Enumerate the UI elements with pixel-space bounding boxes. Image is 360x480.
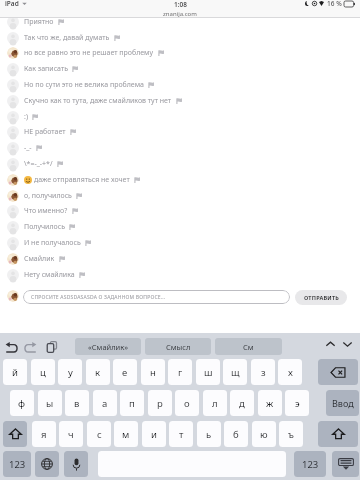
button[interactable]: й: [3, 359, 27, 385]
staticText: р: [157, 397, 163, 410]
button[interactable]: в: [65, 390, 89, 416]
button[interactable]: з: [251, 359, 275, 385]
button[interactable]: НЕ работает: [0, 124, 360, 140]
button[interactable]: Dictation: [64, 451, 88, 477]
staticText: 1:08: [174, 0, 187, 9]
button[interactable]: т: [169, 421, 193, 447]
button[interactable]: Redo: [22, 341, 38, 353]
button[interactable]: И не получалось: [0, 235, 360, 251]
button[interactable]: л: [203, 390, 227, 416]
button[interactable]: См: [215, 338, 282, 355]
staticText: ъ: [288, 428, 294, 441]
staticText: ь: [206, 428, 212, 441]
button[interactable]: Так что же, давай думать: [0, 30, 360, 46]
staticText: а: [102, 397, 108, 410]
button[interactable]: 123: [3, 451, 31, 477]
button[interactable]: б: [224, 421, 248, 447]
button[interactable]: я: [32, 421, 56, 447]
staticText: -_-: [24, 143, 32, 153]
button[interactable]: :): [0, 109, 360, 125]
button[interactable]: ж: [258, 390, 282, 416]
button[interactable]: м: [114, 421, 138, 447]
button[interactable]: Как записать: [0, 61, 360, 77]
staticText: Но по сути это не велика проблема: [24, 80, 144, 90]
button[interactable]: г: [168, 359, 192, 385]
staticText: х: [288, 366, 293, 379]
button[interactable]: д: [230, 390, 254, 416]
staticText: Так что же, давай думать: [24, 33, 110, 43]
button[interactable]: Ввод: [326, 390, 359, 416]
button[interactable]: и: [142, 421, 166, 447]
staticText: б: [233, 428, 239, 441]
button[interactable]: о, получилось: [0, 188, 360, 204]
button[interactable]: Backspace: [318, 359, 358, 385]
button[interactable]: э: [285, 390, 309, 416]
button[interactable]: ы: [38, 390, 62, 416]
button[interactable]: ю: [252, 421, 276, 447]
button[interactable]: с: [87, 421, 111, 447]
button[interactable]: \*=-_-+*/: [0, 156, 360, 172]
staticText: 123: [302, 458, 319, 471]
staticText: к: [95, 366, 101, 379]
button[interactable]: Нету смайлика: [0, 267, 360, 283]
staticText: с: [97, 428, 102, 441]
staticText: Приятно: [24, 17, 54, 27]
staticText: Ввод: [332, 397, 354, 409]
button[interactable]: Смысл: [145, 338, 211, 355]
button[interactable]: р: [148, 390, 172, 416]
staticText: м: [122, 428, 130, 441]
staticText: Как записать: [24, 64, 68, 74]
button[interactable]: х: [278, 359, 302, 385]
staticText: ш: [204, 366, 213, 379]
button[interactable]: ъ: [279, 421, 303, 447]
button[interactable]: ш: [196, 359, 220, 385]
staticText: ы: [46, 397, 54, 410]
button[interactable]: ОТПРАВИТЬ: [295, 290, 347, 305]
button[interactable]: у: [58, 359, 82, 385]
button[interactable]: Что именно?: [0, 203, 360, 219]
staticText: э: [295, 397, 300, 410]
button[interactable]: Получилось: [0, 219, 360, 235]
button[interactable]: к: [86, 359, 110, 385]
button[interactable]: Hide keyboard: [332, 451, 359, 477]
button[interactable]: щ: [223, 359, 247, 385]
button[interactable]: о: [175, 390, 199, 416]
button[interactable]: Next suggestion: [341, 338, 354, 351]
staticText: Скучно как то тута, даже смайликов тут н…: [24, 96, 172, 106]
staticText: См: [243, 342, 254, 352]
staticText: Смайлик: [24, 254, 55, 264]
button[interactable]: н: [141, 359, 165, 385]
staticText: й: [12, 366, 18, 379]
button[interactable]: Приятно: [0, 14, 360, 30]
button[interactable]: ц: [31, 359, 55, 385]
staticText: ф: [18, 397, 26, 410]
button[interactable]: даже отправляться не хочет: [0, 172, 360, 188]
staticText: г: [178, 366, 183, 379]
button[interactable]: Скучно как то тута, даже смайликов тут н…: [0, 93, 360, 109]
button[interactable]: Paste: [45, 341, 59, 353]
button[interactable]: -_-: [0, 140, 360, 156]
staticText: НЕ работает: [24, 127, 66, 137]
staticText: даже отправляться не хочет: [34, 175, 130, 185]
staticText: у: [68, 366, 73, 379]
button[interactable]: ф: [10, 390, 34, 416]
button[interactable]: СПРОСИТЕ ASDSDASASDA О ЗАДАННОМ ВОПРОСЕ.…: [23, 290, 290, 304]
button[interactable]: Previous suggestion: [324, 338, 337, 351]
button[interactable]: а: [93, 390, 117, 416]
button[interactable]: Смайлик: [0, 251, 360, 267]
button[interactable]: Но по сути это не велика проблема: [0, 77, 360, 93]
staticText: СПРОСИТЕ ASDSDASASDA О ЗАДАННОМ ВОПРОСЕ.…: [31, 294, 166, 301]
button[interactable]: е: [113, 359, 137, 385]
button[interactable]: п: [120, 390, 144, 416]
button[interactable]: Shift: [3, 421, 27, 447]
staticText: 16 %: [327, 0, 342, 8]
button[interactable]: ч: [59, 421, 83, 447]
button[interactable]: ь: [197, 421, 221, 447]
button[interactable]: 123: [294, 451, 326, 477]
button[interactable]: Undo: [4, 341, 20, 353]
button[interactable]: Switch keyboard: [35, 451, 59, 477]
button[interactable]: «Смайлик»: [75, 338, 141, 355]
button[interactable]: Shift: [318, 421, 358, 447]
button[interactable]: но все равно это не решает проблему: [0, 45, 360, 61]
